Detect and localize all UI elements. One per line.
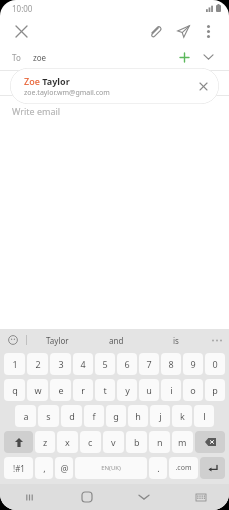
- staticText: o: [190, 384, 196, 396]
- button[interactable]: i: [161, 379, 181, 401]
- staticText: zoe: [33, 52, 47, 63]
- button[interactable]: Backspace: [195, 431, 225, 453]
- staticText: y: [125, 384, 130, 396]
- button[interactable]: s: [38, 405, 59, 427]
- button[interactable]: 7: [139, 353, 159, 375]
- button[interactable]: n: [149, 431, 170, 453]
- staticText: Zoe: [24, 75, 40, 87]
- staticText: To: [12, 52, 21, 63]
- button[interactable]: 8: [161, 353, 181, 375]
- button[interactable]: Send: [171, 19, 195, 43]
- button[interactable]: w: [27, 379, 48, 401]
- staticText: @: [60, 462, 69, 474]
- button[interactable]: Expand recipients: [199, 48, 217, 66]
- staticText: 0: [212, 358, 218, 370]
- button[interactable]: m: [172, 431, 193, 453]
- button[interactable]: 6: [117, 353, 137, 375]
- button[interactable]: More options: [197, 20, 219, 42]
- staticText: 2: [35, 358, 41, 370]
- button[interactable]: b: [126, 431, 147, 453]
- button[interactable]: .: [149, 457, 167, 479]
- button[interactable]: @: [55, 457, 73, 479]
- button[interactable]: e: [50, 379, 71, 401]
- button[interactable]: j: [150, 405, 170, 427]
- staticText: 9: [190, 358, 196, 370]
- staticText: g: [113, 410, 119, 422]
- staticText: 4: [80, 358, 86, 370]
- button[interactable]: k: [172, 405, 192, 427]
- button[interactable]: Switch keyboard: [172, 484, 229, 510]
- button[interactable]: 0: [205, 353, 225, 375]
- button[interactable]: 5: [95, 353, 115, 375]
- staticText: p: [212, 384, 218, 396]
- button[interactable]: and: [87, 329, 146, 351]
- button[interactable]: Subject: [12, 71, 217, 95]
- staticText: EN(UK): [101, 464, 121, 472]
- button[interactable]: ,: [35, 457, 53, 479]
- button[interactable]: More suggestions: [205, 329, 229, 351]
- button[interactable]: q: [4, 379, 25, 401]
- staticText: .: [157, 462, 160, 474]
- staticText: v: [111, 436, 116, 448]
- staticText: j: [159, 410, 162, 422]
- staticText: w: [34, 384, 42, 396]
- staticText: 1: [12, 358, 18, 370]
- button[interactable]: Home: [58, 484, 115, 510]
- staticText: i: [170, 384, 173, 396]
- staticText: u: [146, 384, 152, 396]
- staticText: 10:00: [12, 3, 33, 14]
- button[interactable]: t: [95, 379, 115, 401]
- button[interactable]: r: [73, 379, 93, 401]
- button[interactable]: p: [205, 379, 225, 401]
- button[interactable]: x: [57, 431, 78, 453]
- staticText: k: [180, 410, 185, 422]
- button[interactable]: Attach: [143, 19, 167, 43]
- staticText: z: [43, 436, 48, 448]
- button[interactable]: Taylor: [27, 329, 87, 351]
- button[interactable]: l: [194, 405, 214, 427]
- button[interactable]: u: [139, 379, 159, 401]
- button[interactable]: o: [183, 379, 203, 401]
- button[interactable]: Shift: [4, 431, 33, 453]
- staticText: ,: [43, 462, 46, 474]
- button[interactable]: y: [117, 379, 137, 401]
- button[interactable]: d: [61, 405, 82, 427]
- button[interactable]: h: [128, 405, 148, 427]
- button[interactable]: 2: [27, 353, 48, 375]
- button[interactable]: Recents: [0, 484, 58, 510]
- button[interactable]: Emoji: [0, 329, 26, 351]
- staticText: Taylor: [46, 335, 69, 346]
- button[interactable]: 9: [183, 353, 203, 375]
- staticText: r: [81, 384, 85, 396]
- button[interactable]: f: [84, 405, 104, 427]
- button[interactable]: 3: [50, 353, 71, 375]
- staticText: and: [109, 335, 124, 346]
- staticText: b: [134, 436, 140, 448]
- button[interactable]: 4: [73, 353, 93, 375]
- button[interactable]: Write email: [12, 96, 217, 126]
- staticText: n: [157, 436, 163, 448]
- staticText: is: [173, 335, 179, 346]
- staticText: 3: [58, 358, 64, 370]
- button[interactable]: Add recipient: [175, 48, 193, 66]
- button[interactable]: v: [103, 431, 124, 453]
- button[interactable]: a: [15, 405, 36, 427]
- button[interactable]: Enter: [200, 457, 225, 479]
- button[interactable]: c: [80, 431, 101, 453]
- button[interactable]: g: [106, 405, 126, 427]
- button[interactable]: Zoe: [10, 68, 219, 104]
- button[interactable]: Remove suggestion: [195, 78, 211, 94]
- button[interactable]: 1: [4, 353, 25, 375]
- button[interactable]: EN(UK): [75, 457, 147, 479]
- button[interactable]: Hide keyboard: [115, 484, 172, 510]
- button[interactable]: !#1: [4, 457, 33, 479]
- staticText: e: [58, 384, 64, 396]
- button[interactable]: .com: [169, 457, 198, 479]
- button[interactable]: is: [146, 329, 205, 351]
- staticText: d: [69, 410, 75, 422]
- button[interactable]: Close: [10, 20, 32, 42]
- staticText: Taylor: [40, 75, 70, 87]
- button[interactable]: z: [35, 431, 55, 453]
- staticText: a: [23, 410, 29, 422]
- staticText: s: [46, 410, 51, 422]
